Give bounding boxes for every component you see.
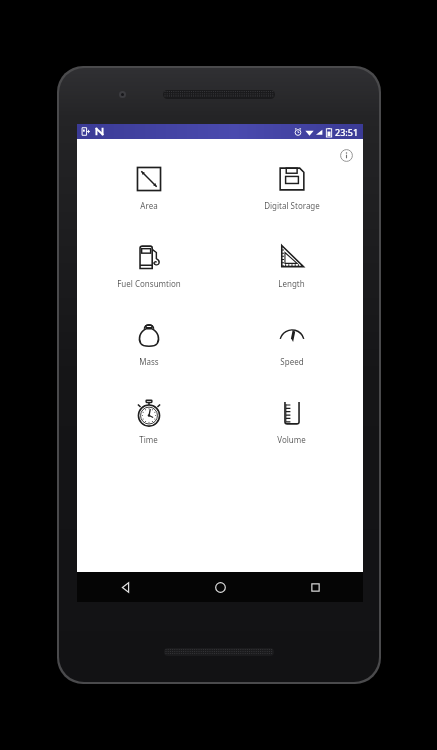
button[interactable]: Back (77, 572, 173, 602)
staticText: Mass (139, 356, 159, 367)
button[interactable]: Fuel Consumtion (77, 239, 220, 295)
button[interactable]: Length (220, 239, 363, 295)
staticText: Digital Storage (264, 200, 320, 211)
button[interactable]: Mass (77, 317, 220, 373)
button[interactable]: Time (77, 395, 220, 451)
button[interactable]: About (335, 144, 357, 166)
button[interactable]: Digital Storage (220, 161, 363, 217)
button[interactable]: Area (77, 161, 220, 217)
button[interactable]: Volume (220, 395, 363, 451)
staticText: Volume (277, 434, 306, 445)
button[interactable]: Home (173, 572, 268, 602)
staticText: Area (140, 200, 158, 211)
staticText: 23:51 (335, 126, 359, 138)
staticText: Speed (280, 356, 304, 367)
button[interactable]: Speed (220, 317, 363, 373)
button[interactable]: Recent apps (268, 572, 363, 602)
staticText: Time (139, 434, 158, 445)
staticText: Length (278, 278, 305, 289)
staticText: Fuel Consumtion (117, 278, 181, 289)
